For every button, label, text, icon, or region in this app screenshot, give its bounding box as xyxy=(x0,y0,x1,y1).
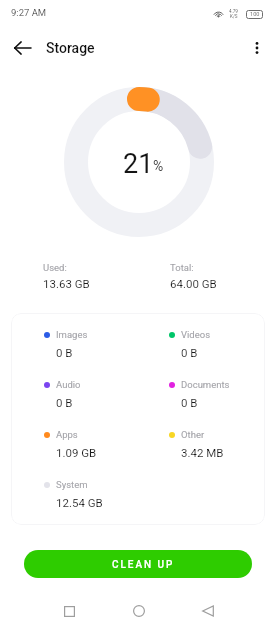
staticText: CLEAN UP xyxy=(112,559,175,571)
button[interactable]: Home xyxy=(125,597,153,625)
staticText: System xyxy=(56,479,88,490)
button[interactable]: Other xyxy=(169,429,265,459)
button[interactable]: Documents xyxy=(169,379,265,409)
button[interactable]: Recent apps xyxy=(55,597,83,625)
button[interactable]: CLEAN UP xyxy=(24,550,252,578)
staticText: 3.42 MB xyxy=(181,446,224,459)
staticText: 0 B xyxy=(56,396,73,409)
staticText: 64.00 GB xyxy=(170,277,217,290)
staticText: 100 xyxy=(250,11,260,18)
staticText: Videos xyxy=(181,329,211,340)
staticText: 9:27 AM xyxy=(11,7,47,18)
staticText: 1.09 GB xyxy=(56,446,97,459)
staticText: Total: xyxy=(170,262,194,273)
staticText: 0 B xyxy=(56,346,73,359)
button[interactable]: Back xyxy=(6,32,38,64)
staticText: 0 B xyxy=(181,346,198,359)
staticText: 13.63 GB xyxy=(43,277,90,290)
staticText: Apps xyxy=(56,429,78,440)
button[interactable]: Audio xyxy=(44,379,140,409)
staticText: Used: xyxy=(43,262,67,273)
staticText: 4.79 xyxy=(229,9,238,14)
staticText: 12.54 GB xyxy=(56,496,103,509)
button[interactable]: More options xyxy=(241,32,273,64)
staticText: % xyxy=(153,158,164,174)
staticText: 21 xyxy=(123,148,154,180)
staticText: Documents xyxy=(181,379,230,390)
button[interactable]: System xyxy=(44,479,140,509)
button[interactable]: Videos xyxy=(169,329,265,359)
staticText: Images xyxy=(56,329,88,340)
staticText: Audio xyxy=(56,379,81,390)
button[interactable]: Images xyxy=(44,329,140,359)
staticText: K/S xyxy=(230,14,238,19)
button[interactable]: Apps xyxy=(44,429,140,459)
staticText: Other xyxy=(181,429,205,440)
staticText: Storage xyxy=(46,40,95,56)
button[interactable]: Back xyxy=(194,597,222,625)
staticText: 0 B xyxy=(181,396,198,409)
